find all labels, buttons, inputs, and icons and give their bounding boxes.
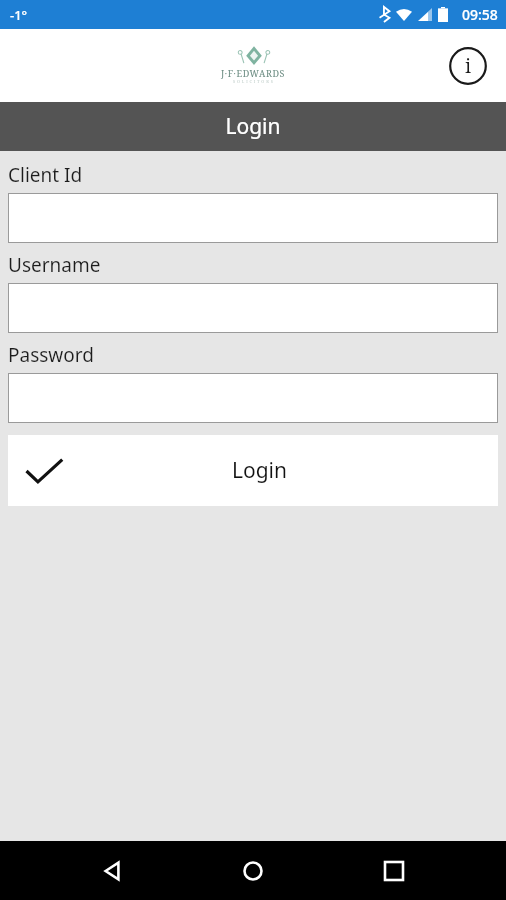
button[interactable]: Home [224,842,282,900]
button[interactable] [8,283,498,333]
staticText: i [465,53,472,79]
button[interactable]: Information [446,44,490,88]
staticText: S O L I C I T O R S [233,79,274,84]
staticText: Password [8,342,94,368]
staticText: Login [232,456,288,485]
staticText: Login [225,112,281,141]
button[interactable] [8,373,498,423]
staticText: 09:58 [462,5,498,24]
button[interactable] [8,193,498,243]
staticText: -1° [10,6,28,24]
button[interactable]: Recent apps [365,842,423,900]
button[interactable]: Back [83,842,141,900]
staticText: Username [8,252,101,278]
staticText: J·F·EDWARDS [221,67,286,79]
staticText: Client Id [8,162,83,188]
button[interactable]: Login [8,435,498,506]
